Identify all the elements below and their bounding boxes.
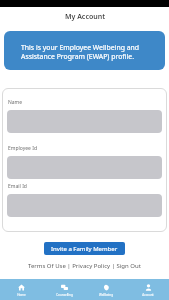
staticText: Wellbeing [99, 293, 113, 297]
staticText: Name [8, 99, 23, 106]
button[interactable]: Account [127, 279, 169, 300]
staticText: Employee Id [8, 145, 38, 152]
button[interactable]: Invite a Family Member [44, 242, 125, 255]
staticText: Home [17, 293, 26, 297]
staticText: My Account [65, 12, 105, 22]
staticText: Account [142, 293, 154, 297]
button[interactable]: Wellbeing [85, 279, 127, 300]
staticText: Counselling [56, 293, 73, 297]
staticText: Invite a Family Member [51, 245, 118, 253]
staticText: This is your Employee Wellbeing and Assi… [21, 43, 140, 61]
button[interactable]: Terms Of Use | Privacy Policy | Sign Out [28, 262, 141, 270]
button[interactable]: This is your Employee Wellbeing and Assi… [4, 31, 165, 70]
button[interactable]: Home [0, 279, 43, 300]
button[interactable]: Counselling [43, 279, 85, 300]
staticText: Email Id [8, 183, 27, 190]
